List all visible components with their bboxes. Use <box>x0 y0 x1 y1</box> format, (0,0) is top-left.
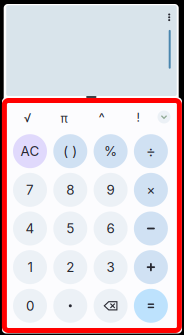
button[interactable]: Decimal point <box>53 289 87 323</box>
button[interactable]: Collapse keypad <box>156 109 172 125</box>
button[interactable]: 4 <box>13 211 47 245</box>
staticText: 5 <box>66 220 74 236</box>
button[interactable]: 6 <box>94 211 128 245</box>
staticText: √ <box>24 111 32 125</box>
button[interactable]: Parentheses <box>53 134 87 168</box>
staticText: 3 <box>107 259 115 275</box>
button[interactable]: Pi <box>49 106 79 130</box>
staticText: 9 <box>107 182 115 198</box>
button[interactable]: Divide <box>134 134 168 168</box>
staticText: 6 <box>107 220 115 236</box>
staticText: 1 <box>27 259 32 275</box>
button[interactable]: AC <box>13 134 47 168</box>
staticText: ( ) <box>63 143 77 159</box>
staticText: % <box>104 143 117 159</box>
button[interactable]: Percent <box>94 134 128 168</box>
button[interactable]: 3 <box>94 250 128 284</box>
staticText: 7 <box>26 182 34 198</box>
button[interactable]: 2 <box>53 250 87 284</box>
staticText: ^ <box>98 109 104 125</box>
button[interactable]: 5 <box>53 211 87 245</box>
button[interactable]: Equals <box>134 289 168 323</box>
button[interactable]: Exponent <box>86 105 116 129</box>
button[interactable]: 7 <box>13 173 47 207</box>
staticText: 2 <box>66 259 74 275</box>
button[interactable]: 1 <box>13 250 47 284</box>
staticText: 4 <box>25 220 34 236</box>
button[interactable]: 0 <box>13 289 47 323</box>
staticText: AC <box>20 143 39 159</box>
button[interactable]: Multiply <box>134 173 168 207</box>
button[interactable]: More options <box>162 9 176 25</box>
button[interactable]: Square root <box>13 106 43 130</box>
button[interactable]: Delete <box>94 289 128 323</box>
staticText: ÷ <box>146 142 156 160</box>
button[interactable]: 9 <box>94 173 128 207</box>
staticText: π <box>61 111 68 126</box>
staticText: × <box>146 182 155 198</box>
staticText: 0 <box>26 298 34 314</box>
button[interactable]: Factorial <box>123 105 153 129</box>
staticText: ! <box>136 110 139 125</box>
button[interactable]: Plus <box>134 250 168 284</box>
staticText: 8 <box>66 182 74 198</box>
button[interactable]: 8 <box>53 173 87 207</box>
button[interactable]: Minus <box>134 211 168 245</box>
